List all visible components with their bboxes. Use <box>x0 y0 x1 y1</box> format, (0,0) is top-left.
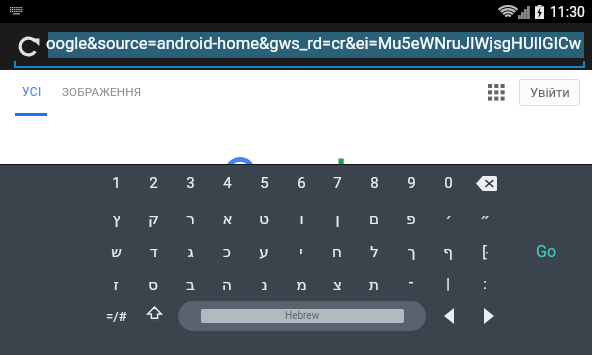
button[interactable]: ס <box>136 268 170 300</box>
staticText: ב <box>186 276 195 293</box>
staticText: | <box>446 275 450 293</box>
staticText: 9 <box>407 174 416 192</box>
staticText: 1 <box>112 174 121 192</box>
button[interactable]: Hebrew <box>178 301 426 331</box>
staticText: ת <box>369 276 379 293</box>
button[interactable]: 4 <box>210 167 244 199</box>
button[interactable]: א <box>210 202 244 234</box>
button[interactable]: Go <box>521 234 571 268</box>
staticText: ד <box>149 243 158 260</box>
button[interactable]: 0 <box>431 167 465 199</box>
button[interactable]: ג <box>173 235 207 267</box>
staticText: 5 <box>260 174 269 192</box>
button[interactable]: ר <box>173 202 207 234</box>
button[interactable]: Reload <box>13 31 44 62</box>
staticText: ח <box>332 243 342 260</box>
button[interactable]: ב <box>173 268 207 300</box>
button[interactable]: Next <box>472 299 505 333</box>
button[interactable]: =/# <box>99 299 134 333</box>
staticText: ש <box>111 243 122 260</box>
staticText: ז <box>113 276 119 293</box>
button[interactable]: י <box>284 235 318 267</box>
staticText: ׳ <box>445 210 452 227</box>
staticText: oogle&source=android-home&gws_rd=cr&ei=M… <box>46 34 582 53</box>
staticText: ה <box>222 276 232 293</box>
button[interactable]: ЗОБРАЖЕННЯ <box>62 78 142 106</box>
button[interactable]: פ <box>394 202 428 234</box>
staticText: 2 <box>149 174 158 192</box>
staticText: : <box>483 275 487 293</box>
staticText: י <box>299 243 303 260</box>
staticText: מ <box>296 276 307 293</box>
staticText: 8 <box>370 174 379 192</box>
button[interactable]: ״ <box>468 202 502 234</box>
button[interactable]: ׳ <box>431 202 465 234</box>
staticText: ם <box>369 210 379 227</box>
button[interactable]: צ <box>320 268 354 300</box>
button[interactable]: Previous <box>432 299 465 333</box>
staticText: ך <box>407 243 416 260</box>
button[interactable]: ק <box>136 202 170 234</box>
button[interactable]: Shift <box>137 297 171 331</box>
button[interactable]: 1 <box>99 167 133 199</box>
staticText: =/# <box>106 309 127 324</box>
button[interactable]: ן <box>320 202 354 234</box>
button[interactable]: 2 <box>136 167 170 199</box>
staticText: ־ <box>408 276 414 293</box>
staticText: 3 <box>186 174 195 192</box>
button[interactable]: ד <box>136 235 170 267</box>
button[interactable]: ע <box>247 235 281 267</box>
staticText: [ּ <box>482 243 488 260</box>
staticText: ג <box>187 243 194 260</box>
staticText: כ <box>223 243 231 260</box>
staticText: ל <box>370 243 379 260</box>
button[interactable]: ז <box>99 268 133 300</box>
button[interactable]: [ּ <box>468 235 502 267</box>
staticText: א <box>222 210 233 227</box>
staticText: צ <box>333 276 342 293</box>
button[interactable]: ־ <box>394 268 428 300</box>
button[interactable]: | <box>431 268 465 300</box>
button[interactable]: ת <box>357 268 391 300</box>
button[interactable]: ץ <box>99 202 133 234</box>
button[interactable]: Backspace <box>470 167 503 199</box>
button[interactable]: 3 <box>173 167 207 199</box>
button[interactable]: ך <box>394 235 428 267</box>
staticText: 6 <box>297 174 306 192</box>
button[interactable]: ה <box>210 268 244 300</box>
button[interactable]: Google apps <box>480 76 512 108</box>
button[interactable]: УСІ <box>22 78 42 106</box>
button[interactable]: 8 <box>357 167 391 199</box>
button[interactable]: ל <box>357 235 391 267</box>
staticText: 4 <box>223 174 232 192</box>
button[interactable]: ש <box>99 235 133 267</box>
staticText: נ <box>261 276 268 293</box>
button[interactable]: 5 <box>247 167 281 199</box>
button[interactable]: 6 <box>284 167 318 199</box>
button[interactable]: נ <box>247 268 281 300</box>
button[interactable]: כ <box>210 235 244 267</box>
staticText: ו <box>299 210 304 227</box>
button[interactable]: ו <box>284 202 318 234</box>
button[interactable]: מ <box>284 268 318 300</box>
staticText: ט <box>259 210 269 227</box>
staticText: ק <box>148 210 159 227</box>
button[interactable]: : <box>468 268 502 300</box>
staticText: ס <box>148 276 158 293</box>
staticText: ר <box>186 210 195 227</box>
button[interactable]: ם <box>357 202 391 234</box>
staticText: УСІ <box>22 85 42 99</box>
button[interactable]: ף <box>431 235 465 267</box>
staticText: ״ <box>480 210 490 227</box>
staticText: 0 <box>444 174 453 192</box>
button[interactable]: ט <box>247 202 281 234</box>
button[interactable]: Увійти <box>519 79 580 106</box>
button[interactable]: 7 <box>320 167 354 199</box>
button[interactable]: ח <box>320 235 354 267</box>
staticText: ЗОБРАЖЕННЯ <box>62 85 142 99</box>
button[interactable]: 9 <box>394 167 428 199</box>
staticText: 11:30 <box>550 4 585 20</box>
staticText: ף <box>443 243 453 260</box>
staticText: פ <box>406 210 416 227</box>
staticText: Go <box>536 242 557 261</box>
